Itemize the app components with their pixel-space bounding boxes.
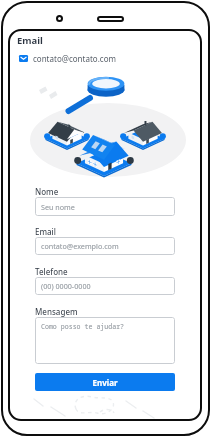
button[interactable]: contato@contato.com [19, 53, 116, 64]
staticText: Telefone [35, 266, 68, 277]
staticText: Nome [35, 186, 59, 197]
button[interactable]: contato@exemplo.com [35, 237, 175, 255]
staticText: Email [35, 226, 56, 237]
button[interactable]: (00) 0000-0000 [35, 277, 175, 295]
staticText: contato@contato.com [33, 53, 116, 64]
staticText: Seu nome [41, 202, 75, 212]
staticText: Email [17, 34, 43, 47]
staticText: Como posso te ajudar? [41, 322, 125, 331]
staticText: (00) 0000-0000 [41, 281, 91, 291]
button[interactable]: Seu nome [35, 197, 175, 216]
staticText: Mensagem [35, 306, 78, 317]
button[interactable]: Como posso te ajudar? [35, 317, 175, 364]
button[interactable]: Enviar [35, 373, 175, 391]
staticText: contato@exemplo.com [41, 241, 119, 251]
staticText: Enviar [92, 377, 118, 388]
